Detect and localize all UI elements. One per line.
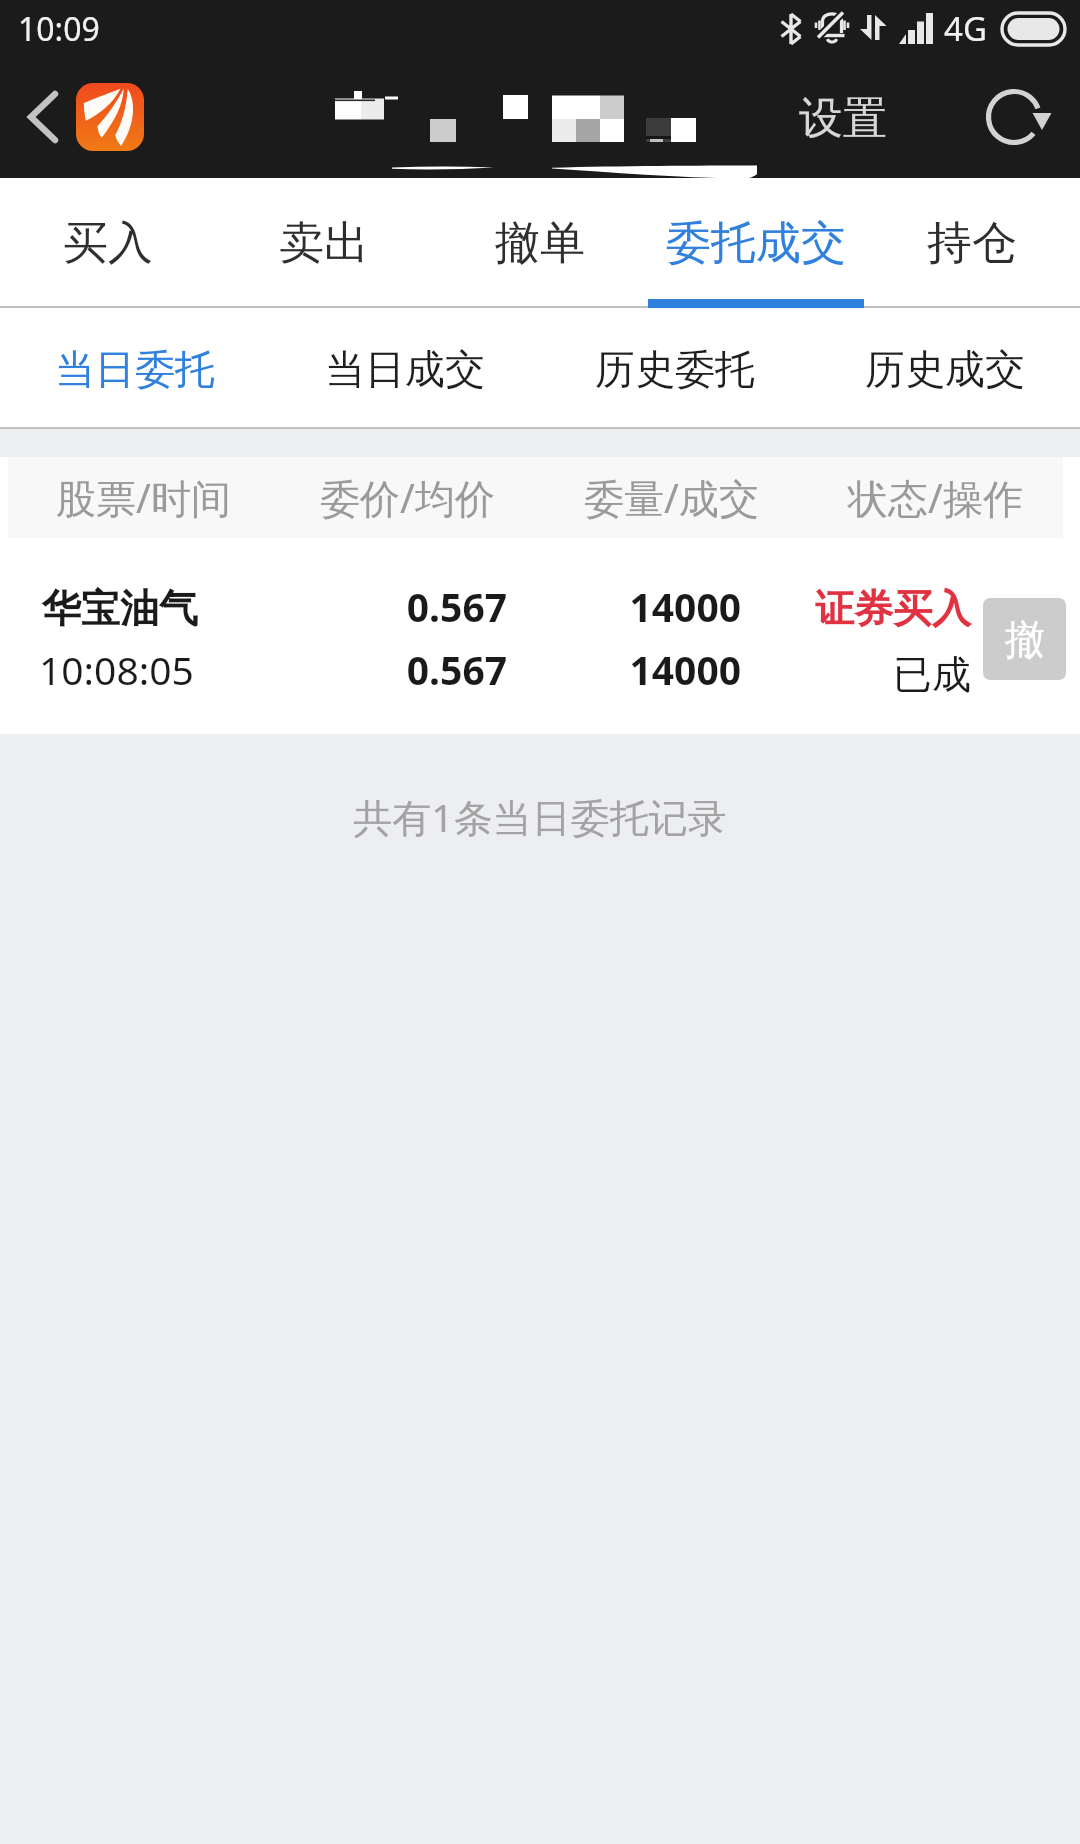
staticText: 共有1条当日委托记录 — [0, 790, 1080, 843]
button[interactable]: 委托成交 — [648, 178, 864, 308]
staticText: 撤 — [1005, 614, 1045, 664]
staticText: 状态/操作 — [848, 470, 1023, 525]
button[interactable]: 刷新 — [964, 67, 1064, 167]
staticText: 当日委托 — [55, 344, 215, 394]
button[interactable]: 返回 — [4, 72, 80, 164]
button[interactable]: 历史委托 — [540, 308, 810, 429]
staticText: 持仓 — [927, 215, 1017, 272]
button[interactable]: 当日成交 — [270, 308, 540, 429]
staticText: 股票/时间 — [56, 470, 231, 525]
staticText: 委量/成交 — [584, 470, 759, 525]
staticText: 委价/均价 — [320, 470, 495, 525]
staticText: 4G — [944, 6, 987, 51]
staticText: 委托成交 — [666, 215, 846, 272]
staticText: 撤单 — [495, 215, 585, 272]
staticText: 设置 — [799, 91, 887, 146]
staticText: 14000 — [541, 643, 741, 696]
button[interactable]: 撤单 — [432, 178, 648, 308]
button[interactable]: 持仓 — [864, 178, 1080, 308]
staticText: 卖出 — [279, 215, 369, 272]
staticText: 买入 — [63, 215, 153, 272]
staticText: 当日成交 — [325, 344, 485, 394]
button[interactable]: 卖出 — [216, 178, 432, 308]
staticText: 0.567 — [307, 643, 507, 696]
staticText: 证券买入 — [771, 584, 971, 633]
staticText: 华宝油气 — [42, 584, 198, 633]
button[interactable]: 撤单 — [983, 598, 1066, 680]
button[interactable]: 同花顺 — [76, 83, 144, 151]
staticText: 14000 — [541, 580, 741, 633]
button[interactable]: 历史成交 — [810, 308, 1080, 429]
button[interactable]: 华宝油气 — [0, 538, 1080, 734]
button[interactable]: 设置 — [772, 58, 914, 178]
button[interactable]: 买入 — [0, 178, 216, 308]
staticText: 10:08:05 — [39, 643, 194, 696]
staticText: 历史委托 — [595, 344, 755, 394]
button[interactable]: 当日委托 — [0, 308, 270, 429]
staticText: 已成 — [771, 650, 971, 699]
staticText: 0.567 — [307, 580, 507, 633]
staticText: 10:09 — [18, 7, 100, 51]
staticText: 历史成交 — [865, 344, 1025, 394]
